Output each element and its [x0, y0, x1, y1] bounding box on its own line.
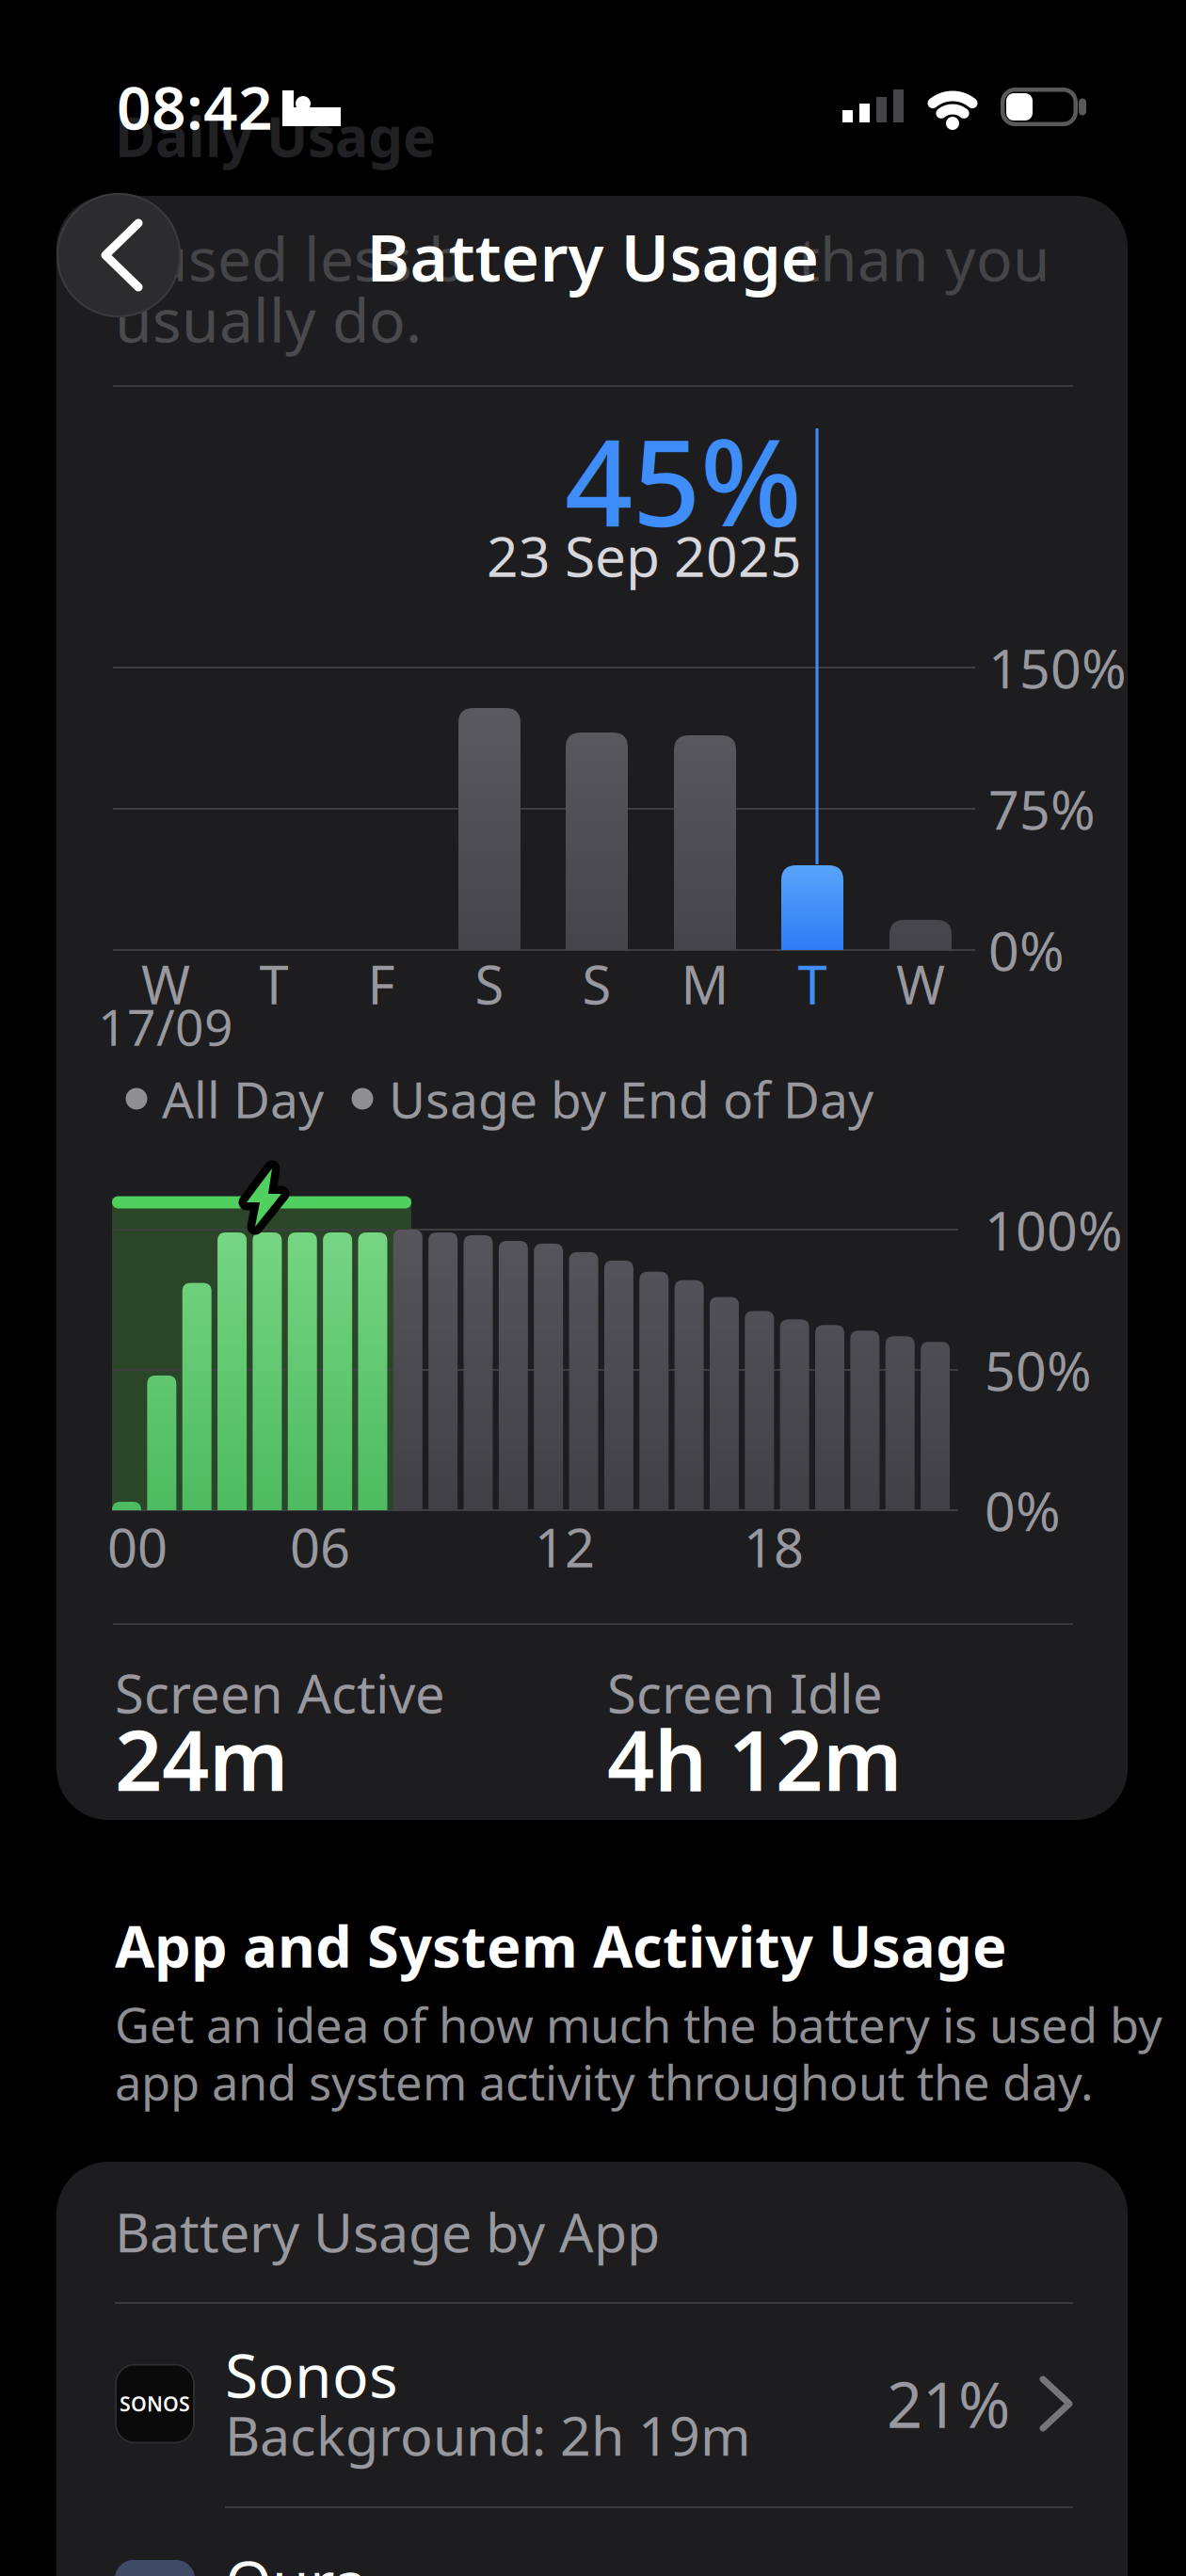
staticText: Screen Active: [115, 1658, 445, 1728]
staticText: Sonos: [225, 2334, 398, 2415]
staticText: W: [141, 949, 190, 1019]
staticText: 0%: [988, 914, 1065, 986]
staticText: 23 Sep 2025: [487, 519, 802, 592]
button[interactable]: SONOS: [56, 2332, 1128, 2475]
staticText: Usage by End of Day: [389, 1065, 873, 1132]
staticText: S: [475, 949, 504, 1019]
staticText: S: [582, 949, 611, 1019]
staticText: 75%: [988, 773, 1096, 845]
staticText: usually do.: [115, 279, 422, 359]
staticText: 45%: [565, 401, 802, 559]
staticText: Daily Usage: [115, 99, 436, 172]
staticText: All Day: [162, 1065, 324, 1132]
staticText: 17/09: [98, 993, 233, 1060]
staticText: Oura: [225, 2542, 367, 2576]
staticText: T: [798, 949, 827, 1019]
staticText: 24m: [115, 1704, 288, 1814]
staticText: app and system activity throughout the d…: [115, 2050, 1094, 2113]
staticText: Background: 2h 19m: [225, 2399, 751, 2471]
staticText: 100%: [985, 1194, 1123, 1265]
staticText: 08:42: [117, 66, 273, 146]
staticText: F: [368, 949, 395, 1019]
staticText: Battery Usage: [367, 213, 819, 299]
staticText: 4h 12m: [607, 1704, 902, 1814]
staticText: 18: [744, 1512, 804, 1582]
staticText: 150%: [988, 632, 1127, 703]
staticText: W: [896, 949, 945, 1019]
staticText: Screen Idle: [607, 1658, 883, 1728]
staticText: App and System Activity Usage: [115, 1907, 1007, 1984]
staticText: than you: [798, 218, 1050, 298]
staticText: Battery Usage by App: [115, 2196, 660, 2267]
staticText: Get an idea of how much the battery is u…: [115, 1993, 1162, 2056]
staticText: used less b: [151, 218, 465, 298]
button[interactable]: Oura: [56, 2544, 1128, 2576]
staticText: 50%: [985, 1334, 1092, 1406]
staticText: SONOS: [120, 2390, 190, 2417]
staticText: 21%: [887, 2362, 1010, 2445]
staticText: 12: [535, 1512, 595, 1582]
staticText: 00: [107, 1512, 168, 1582]
staticText: 06: [290, 1512, 350, 1582]
staticText: M: [681, 949, 729, 1019]
staticText: T: [259, 949, 288, 1019]
staticText: 0%: [985, 1474, 1061, 1546]
button[interactable]: Back: [56, 193, 181, 317]
